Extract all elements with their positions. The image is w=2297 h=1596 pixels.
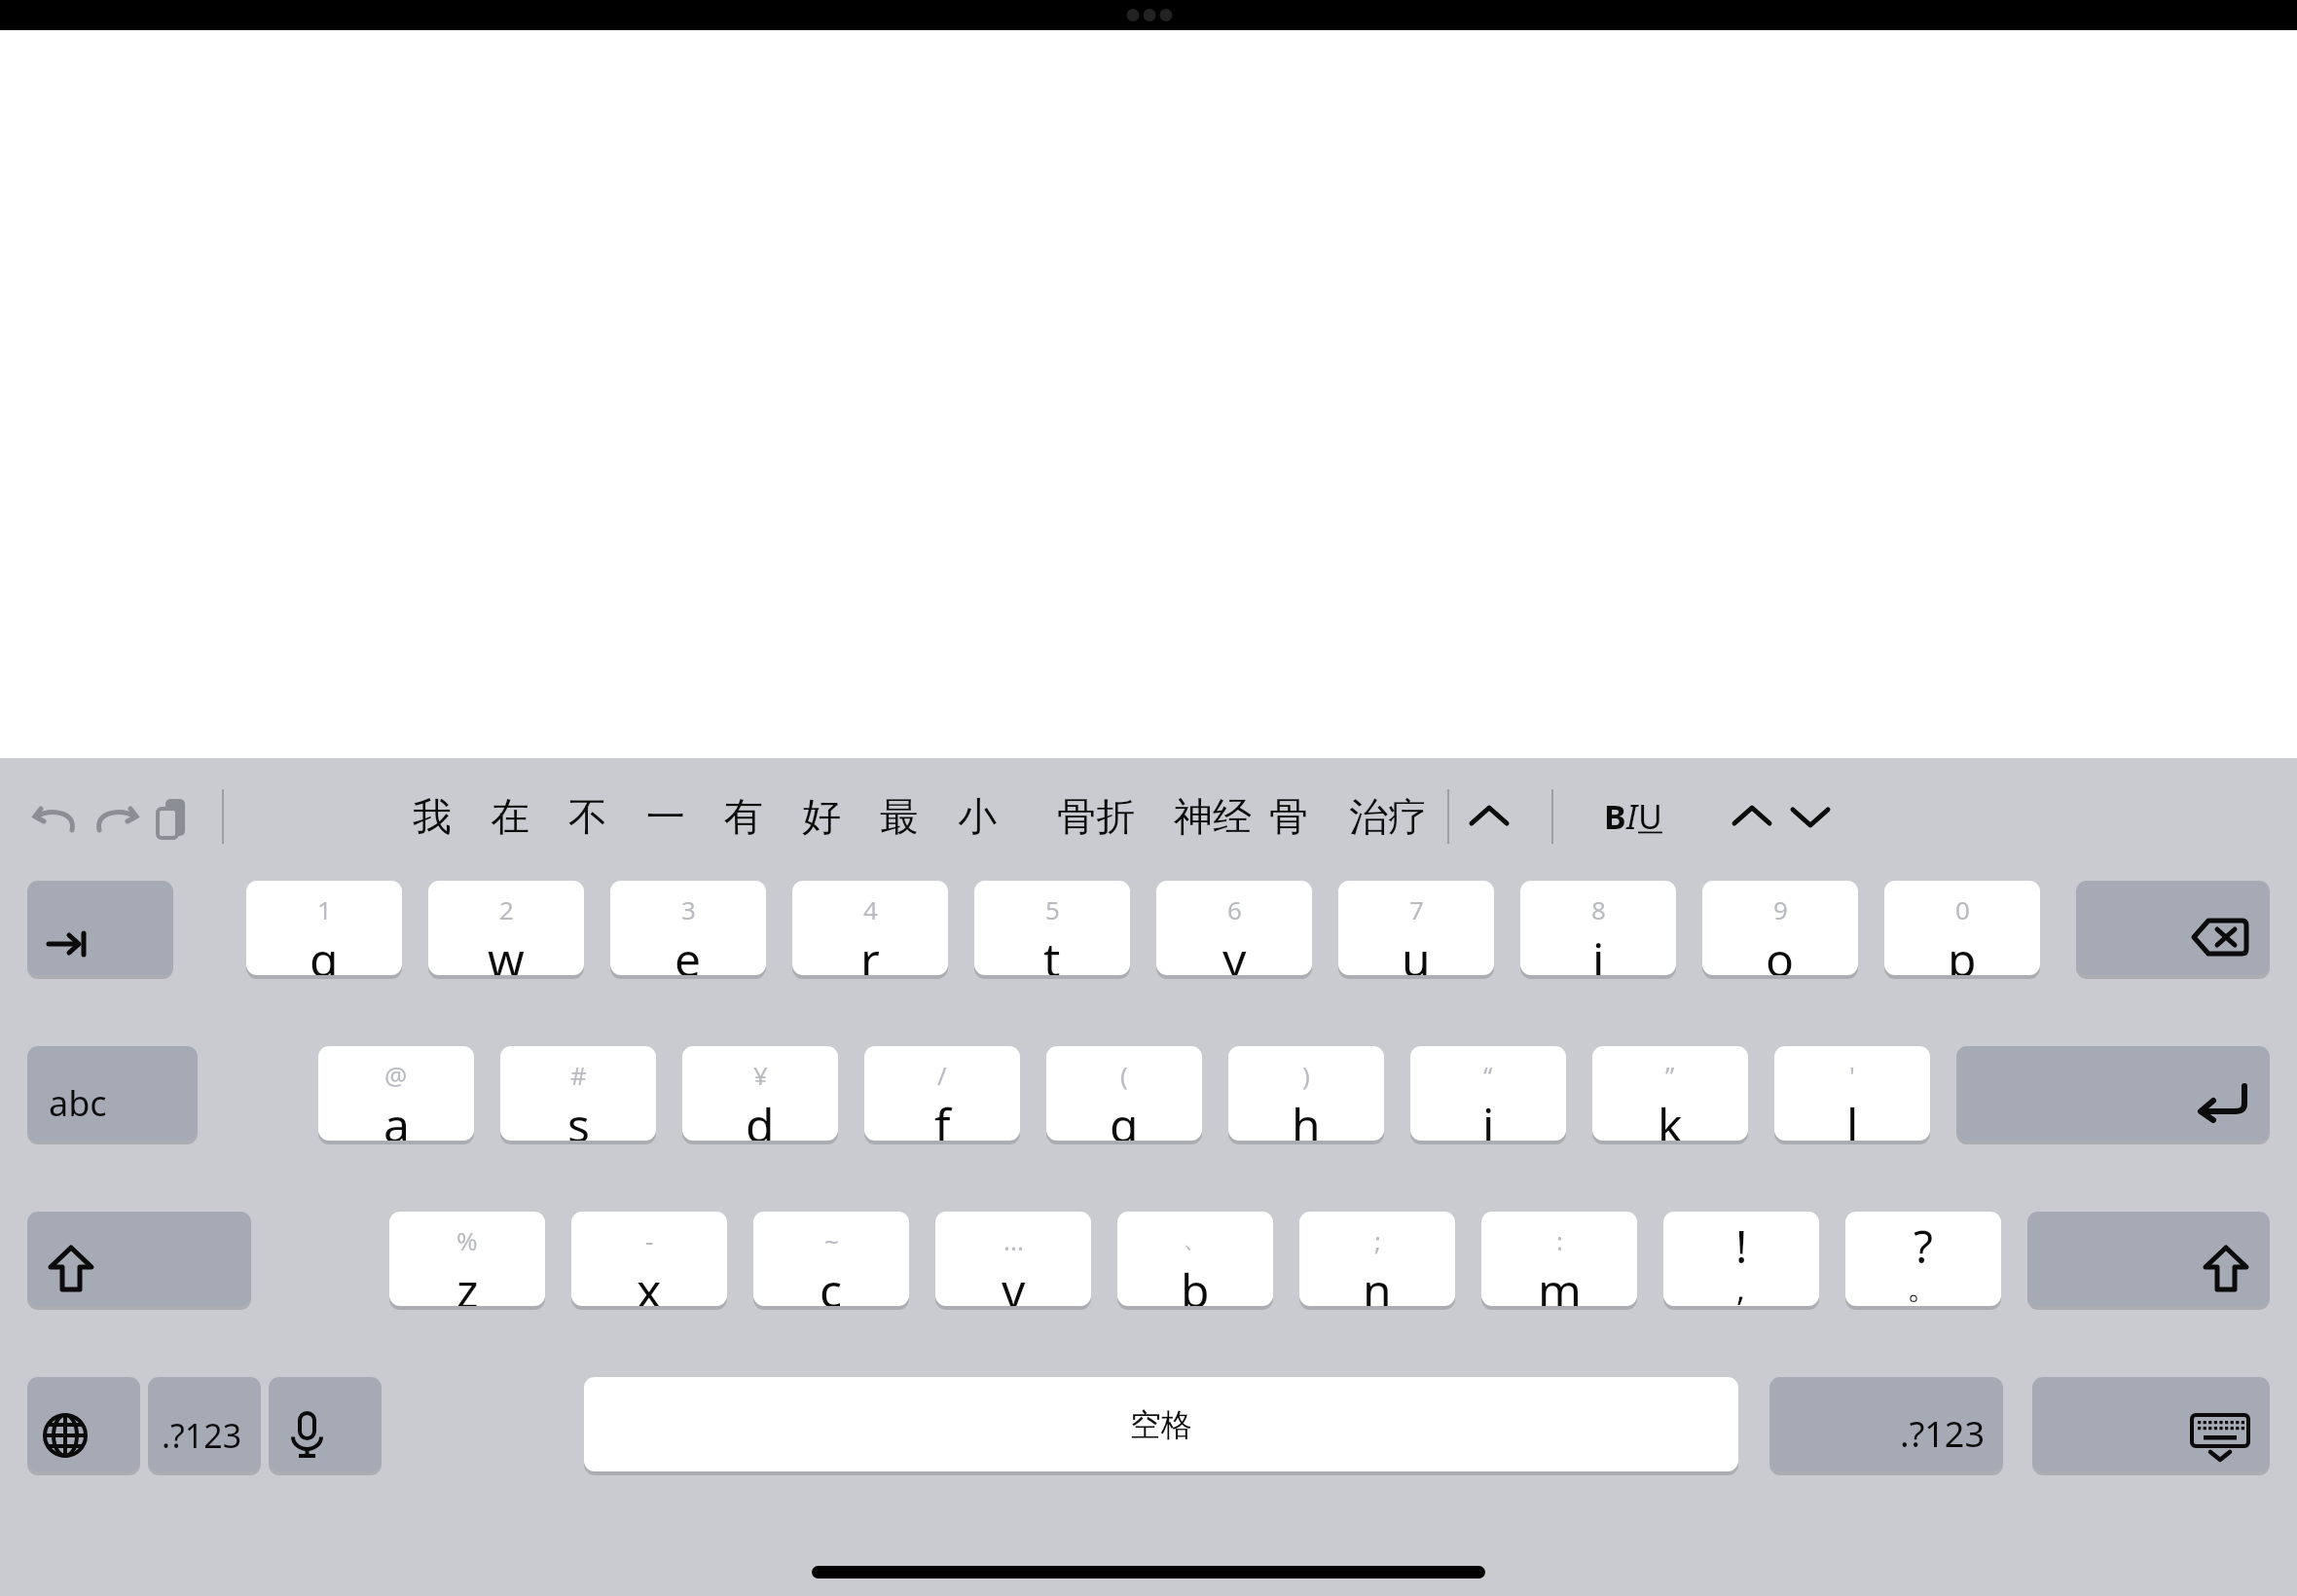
button[interactable]: .?123 (148, 1377, 261, 1471)
button[interactable]: ; (1299, 1212, 1455, 1306)
button[interactable]: 2 (428, 881, 584, 975)
staticText: g (1110, 1093, 1139, 1141)
staticText: 0 (1955, 892, 1970, 926)
button[interactable]: 骨 (1258, 785, 1320, 848)
button[interactable]: 神经 (1160, 785, 1265, 848)
button[interactable]: Hide keyboard (2032, 1377, 2270, 1471)
button[interactable]: 0 (1884, 881, 2040, 975)
button[interactable]: Dictation (269, 1377, 382, 1471)
button[interactable]: Expand candidates (1460, 787, 1518, 846)
staticText: y (1222, 927, 1247, 975)
button[interactable]: 、 (1117, 1212, 1273, 1306)
staticText: ! (1735, 1215, 1748, 1277)
staticText: r (860, 927, 880, 975)
button[interactable]: - (571, 1212, 727, 1306)
button[interactable]: Next (1781, 787, 1840, 846)
button[interactable]: Redo (86, 787, 144, 846)
staticText: t (1043, 927, 1061, 975)
staticText: - (645, 1223, 654, 1257)
button[interactable]: Backspace (2076, 881, 2270, 975)
staticText: k (1658, 1093, 1683, 1141)
staticText: 神经 (1174, 792, 1252, 841)
button[interactable]: Undo (27, 787, 86, 846)
button[interactable]: ” (1592, 1046, 1748, 1141)
button[interactable]: 1 (246, 881, 402, 975)
button[interactable]: 在 (479, 785, 541, 848)
button[interactable]: 8 (1520, 881, 1676, 975)
staticText: B (1604, 794, 1626, 839)
staticText: p (1948, 927, 1977, 975)
button[interactable]: 小 (946, 785, 1008, 848)
staticText: “ (1483, 1058, 1493, 1092)
button[interactable]: “ (1410, 1046, 1566, 1141)
staticText: 、 (1183, 1223, 1208, 1255)
button[interactable]: ( (1046, 1046, 1202, 1141)
button[interactable]: 7 (1338, 881, 1494, 975)
staticText: 7 (1409, 892, 1424, 926)
staticText: ( (1120, 1058, 1128, 1092)
staticText: ... (1003, 1223, 1024, 1257)
staticText: .?123 (162, 1413, 242, 1458)
button[interactable]: 有 (712, 785, 775, 848)
button[interactable]: 5 (974, 881, 1130, 975)
button[interactable]: 3 (610, 881, 766, 975)
button[interactable]: Shift (27, 1212, 251, 1306)
staticText: ' (1849, 1058, 1855, 1092)
button[interactable]: 空格 (584, 1377, 1738, 1471)
staticText: 8 (1591, 892, 1606, 926)
button[interactable]: Previous (1723, 787, 1781, 846)
button[interactable]: 好 (790, 785, 853, 848)
button[interactable]: .?123 (1769, 1377, 2003, 1471)
staticText: I (1626, 794, 1638, 839)
button[interactable]: 不 (557, 785, 619, 848)
staticText: 空格 (1130, 1405, 1192, 1444)
button[interactable]: # (500, 1046, 656, 1141)
button[interactable]: ... (935, 1212, 1091, 1306)
staticText: 小 (958, 792, 997, 841)
staticText: 骨折 (1057, 792, 1135, 841)
staticText: 我 (413, 792, 452, 841)
button[interactable]: Shift (2027, 1212, 2270, 1306)
button[interactable]: 治疗 (1335, 785, 1440, 848)
staticText: m (1538, 1258, 1582, 1306)
button[interactable]: 最 (868, 785, 930, 848)
staticText: ” (1665, 1058, 1675, 1092)
staticText: 3 (681, 892, 696, 926)
staticText: z (456, 1258, 479, 1306)
staticText: 9 (1773, 892, 1788, 926)
staticText: u (1402, 927, 1431, 975)
staticText: 在 (491, 792, 529, 841)
button[interactable]: / (864, 1046, 1020, 1141)
staticText: 骨 (1269, 792, 1308, 841)
button[interactable]: Return (1956, 1046, 2270, 1141)
button[interactable]: 9 (1702, 881, 1858, 975)
staticText: 。 (1907, 1266, 1940, 1306)
button[interactable]: 6 (1156, 881, 1312, 975)
button[interactable]: 我 (401, 785, 463, 848)
staticText: 不 (568, 792, 607, 841)
staticText: q (310, 927, 339, 975)
staticText: a (383, 1093, 410, 1141)
button[interactable]: Switch language (27, 1377, 140, 1471)
button[interactable]: ~ (753, 1212, 909, 1306)
staticText: o (1766, 927, 1795, 975)
staticText: ~ (824, 1223, 839, 1257)
button[interactable]: 一 (635, 785, 697, 848)
button[interactable]: ! (1663, 1212, 1819, 1306)
button[interactable]: B (1604, 787, 1711, 846)
button[interactable]: ) (1228, 1046, 1384, 1141)
button[interactable]: 骨折 (1043, 785, 1148, 848)
staticText: 6 (1227, 892, 1242, 926)
button[interactable]: Tab (27, 881, 173, 975)
button[interactable]: ¥ (682, 1046, 838, 1141)
staticText: : (1556, 1223, 1563, 1257)
button[interactable]: % (389, 1212, 545, 1306)
staticText: 最 (880, 792, 919, 841)
button[interactable]: 4 (792, 881, 948, 975)
button[interactable]: abc (27, 1046, 198, 1141)
button[interactable]: : (1481, 1212, 1637, 1306)
button[interactable]: Paste (144, 787, 202, 846)
button[interactable]: @ (318, 1046, 474, 1141)
button[interactable]: ? (1845, 1212, 2001, 1306)
button[interactable]: ' (1774, 1046, 1930, 1141)
